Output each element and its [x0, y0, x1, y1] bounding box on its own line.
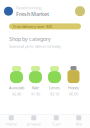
- staticText: Kale: [32, 85, 39, 90]
- button[interactable]: Home: [0, 115, 22, 127]
- button[interactable]: Cart: [45, 115, 67, 127]
- button[interactable]: Kale: [27, 66, 44, 97]
- staticText: Limes: [49, 85, 60, 90]
- staticText: Fresh Market: [16, 10, 49, 17]
- staticText: Good morning: [16, 5, 41, 10]
- staticText: Cart: [52, 121, 60, 127]
- button[interactable]: Free delivery over $25: [0, 17, 90, 29]
- staticText: $2.40: [12, 91, 21, 97]
- staticText: $3.10: [50, 91, 59, 97]
- button[interactable]: Avocado: [8, 66, 25, 97]
- staticText: Shop by category: [9, 35, 51, 42]
- button[interactable]: Rewards: [75, 6, 85, 16]
- button[interactable]: Me: [67, 115, 90, 127]
- button[interactable]: Account: [4, 7, 13, 16]
- staticText: Me: [76, 121, 82, 127]
- staticText: $1.90: [31, 91, 40, 97]
- staticText: Home: [6, 121, 17, 127]
- button[interactable]: Browse: [22, 115, 45, 127]
- button[interactable]: Limes: [46, 66, 63, 97]
- staticText: Free delivery over $25: [13, 24, 52, 29]
- staticText: Browse: [27, 121, 41, 127]
- staticText: Honey: [68, 85, 79, 90]
- staticText: $6.00: [69, 91, 78, 97]
- staticText: Avocado: [9, 85, 24, 90]
- staticText: Seasonal picks delivered today: [9, 43, 61, 49]
- button[interactable]: Honey: [65, 66, 82, 97]
